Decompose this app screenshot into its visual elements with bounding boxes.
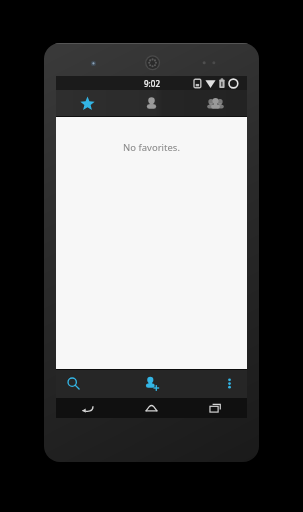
button[interactable]: Contacts	[119, 90, 183, 117]
button[interactable]: Back	[56, 398, 119, 418]
button[interactable]: Favorites	[56, 90, 119, 117]
staticText: No favorites.	[123, 141, 180, 154]
button[interactable]: More options	[182, 369, 243, 398]
button[interactable]: Add contact	[121, 369, 182, 398]
button[interactable]: Search	[60, 369, 121, 398]
staticText: 9:02	[144, 78, 160, 89]
button[interactable]: Home	[119, 398, 183, 418]
button[interactable]: Recents	[183, 398, 247, 418]
button[interactable]: Groups	[183, 90, 247, 117]
